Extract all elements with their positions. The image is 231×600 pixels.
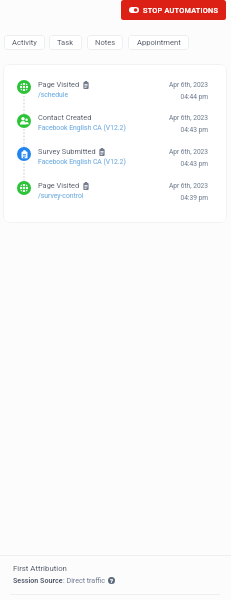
- button[interactable]: Notes: [87, 35, 123, 50]
- staticText: Notes: [95, 38, 116, 47]
- staticText: Apr 6th, 2023: [168, 148, 208, 156]
- staticText: : Direct traffic: [63, 576, 105, 584]
- staticText: STOP AUTOMATIONS: [143, 6, 219, 15]
- other: Help: [108, 577, 115, 584]
- staticText: 04:39 pm: [180, 194, 208, 202]
- staticText: Facebook English CA (V12.2): [38, 124, 126, 132]
- staticText: Page Visited: [38, 181, 80, 190]
- staticText: ?: [110, 577, 114, 584]
- staticText: First Attribution: [13, 564, 67, 573]
- staticText: Session Source: [13, 576, 63, 584]
- staticText: /survey-control: [38, 192, 84, 200]
- staticText: Apr 6th, 2023: [168, 182, 208, 190]
- button[interactable]: STOP AUTOMATIONS: [121, 0, 226, 20]
- staticText: Facebook English CA (V12.2): [38, 158, 126, 166]
- staticText: 04:43 pm: [180, 126, 208, 134]
- staticText: Apr 6th, 2023: [168, 114, 208, 122]
- button[interactable]: Appointment: [128, 35, 189, 50]
- staticText: Appointment: [137, 38, 181, 47]
- staticText: Activity: [12, 38, 37, 47]
- staticText: Contact Created: [38, 113, 92, 122]
- staticText: 04:44 pm: [180, 93, 208, 101]
- staticText: 04:43 pm: [180, 160, 208, 168]
- button[interactable]: Activity: [4, 35, 45, 50]
- button[interactable]: Task: [49, 35, 82, 50]
- staticText: Page Visited: [38, 80, 80, 89]
- staticText: Apr 6th, 2023: [168, 81, 208, 89]
- button[interactable]: Session Source: [13, 576, 115, 584]
- staticText: Survey Submitted: [38, 147, 96, 156]
- staticText: Task: [57, 38, 74, 47]
- staticText: /schedule: [38, 91, 69, 99]
